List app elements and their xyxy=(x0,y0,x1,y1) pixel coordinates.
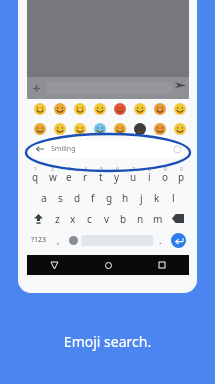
staticText: 6 xyxy=(116,166,119,173)
staticText: 1 xyxy=(34,166,37,173)
staticText: o xyxy=(162,170,169,184)
button[interactable]: Emoji xyxy=(150,120,170,137)
staticText: 7 xyxy=(132,166,135,173)
staticText: Smiling xyxy=(51,144,76,154)
staticText: 2 xyxy=(51,166,54,173)
button[interactable]: b xyxy=(115,208,132,229)
button[interactable]: Home xyxy=(81,255,135,275)
button[interactable]: 6 xyxy=(109,166,125,187)
staticText: Emoji search. xyxy=(0,332,215,351)
staticText: 5 xyxy=(100,166,103,173)
button[interactable]: Emoji xyxy=(50,100,70,117)
button[interactable]: Emoji xyxy=(170,100,189,117)
button[interactable]: Shift xyxy=(27,208,49,229)
staticText: x xyxy=(70,212,76,226)
staticText: 3 xyxy=(68,166,71,173)
staticText: q xyxy=(32,170,39,184)
button[interactable]: j xyxy=(133,187,149,208)
button[interactable]: Back xyxy=(27,255,81,275)
button[interactable]: n xyxy=(132,208,149,229)
staticText: w xyxy=(49,170,57,184)
button[interactable]: Attach xyxy=(29,81,43,95)
staticText: e xyxy=(66,170,72,184)
staticText: p xyxy=(178,170,185,184)
button[interactable]: Emoji xyxy=(50,120,70,137)
button[interactable]: v xyxy=(98,208,115,229)
button[interactable]: Clear xyxy=(172,144,182,154)
button[interactable]: 3 xyxy=(61,166,77,187)
button[interactable]: Emoji xyxy=(30,120,50,137)
button[interactable]: z xyxy=(49,208,65,229)
button[interactable]: m xyxy=(149,208,166,229)
button[interactable]: d xyxy=(69,187,85,208)
staticText: g xyxy=(106,191,113,205)
button[interactable]: Emoji xyxy=(110,120,130,137)
staticText: m xyxy=(153,212,163,226)
button[interactable]: Emoji xyxy=(110,100,130,117)
staticText: . xyxy=(159,234,162,246)
staticText: h xyxy=(122,191,129,205)
button[interactable]: Emoji xyxy=(90,100,110,117)
staticText: t xyxy=(99,170,103,184)
staticText: d xyxy=(74,191,81,205)
button[interactable]: Emoji xyxy=(30,100,50,117)
staticText: u xyxy=(130,170,137,184)
staticText: y xyxy=(114,170,120,184)
button[interactable]: c xyxy=(81,208,98,229)
button[interactable]: Back xyxy=(34,143,46,155)
button[interactable]: Send xyxy=(173,79,188,94)
button[interactable]: 2 xyxy=(44,166,61,187)
button[interactable]: 4 xyxy=(77,166,93,187)
button[interactable]: Recents xyxy=(135,255,189,275)
button[interactable]: , xyxy=(51,229,65,251)
button[interactable]: Emoji xyxy=(90,120,110,137)
button[interactable]: ?123 xyxy=(27,229,51,251)
button[interactable]: s xyxy=(52,187,69,208)
button[interactable]: . xyxy=(153,229,167,251)
button[interactable]: Enter xyxy=(171,233,186,248)
button[interactable]: l xyxy=(165,187,181,208)
staticText: a xyxy=(41,191,47,205)
staticText: v xyxy=(104,212,110,226)
staticText: s xyxy=(58,191,63,205)
staticText: b xyxy=(120,212,127,226)
staticText: l xyxy=(172,191,175,205)
button[interactable]: a xyxy=(35,187,52,208)
button[interactable]: Emoji xyxy=(150,100,170,117)
button[interactable]: 1 xyxy=(27,166,44,187)
button[interactable]: 0 xyxy=(173,166,189,187)
staticText: 9 xyxy=(164,166,167,173)
staticText: k xyxy=(154,191,160,205)
button[interactable]: 9 xyxy=(157,166,173,187)
staticText: n xyxy=(137,212,144,226)
button[interactable]: Emoji xyxy=(130,120,150,137)
button[interactable]: Emoji xyxy=(70,100,90,117)
staticText: j xyxy=(140,191,143,205)
staticText: 8 xyxy=(148,166,151,173)
button[interactable]: g xyxy=(101,187,117,208)
staticText: z xyxy=(55,212,60,226)
button[interactable]: 5 xyxy=(93,166,109,187)
staticText: , xyxy=(57,234,60,246)
button[interactable]: x xyxy=(65,208,81,229)
button[interactable]: k xyxy=(149,187,165,208)
staticText: 0 xyxy=(180,166,183,173)
staticText: f xyxy=(91,191,95,205)
staticText: r xyxy=(83,170,88,184)
button[interactable]: f xyxy=(85,187,101,208)
button[interactable]: Back xyxy=(31,140,185,158)
button[interactable]: 8 xyxy=(141,166,157,187)
button[interactable]: Emoji xyxy=(130,100,150,117)
button[interactable]: Backspace xyxy=(166,208,189,229)
staticText: c xyxy=(87,212,92,226)
button[interactable]: h xyxy=(117,187,133,208)
staticText: i xyxy=(148,170,151,184)
staticText: ?123 xyxy=(31,235,47,245)
button[interactable]: Emoji xyxy=(70,120,90,137)
button[interactable]: Language xyxy=(65,229,81,251)
staticText: 4 xyxy=(84,166,87,173)
button[interactable]: 7 xyxy=(125,166,141,187)
button[interactable]: Emoji xyxy=(170,120,189,137)
